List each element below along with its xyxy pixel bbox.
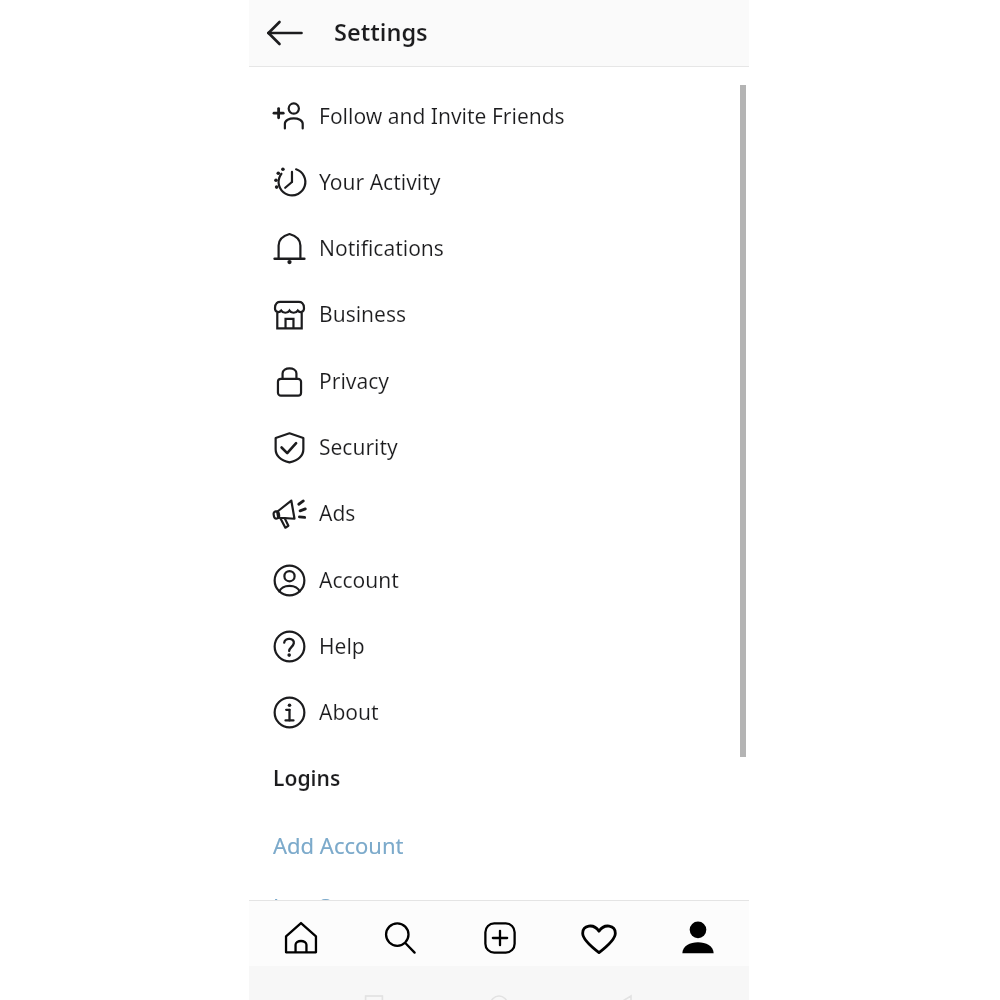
button[interactable]: Follow and Invite Friends [249,83,749,149]
button[interactable]: Notifications [249,215,749,281]
button[interactable]: Log Out [273,891,356,921]
staticText: Help [319,632,365,661]
staticText: Your Activity [319,168,441,197]
staticText: Security [319,433,398,462]
button[interactable]: About [249,679,749,745]
staticText: About [319,698,379,727]
button[interactable]: Help [249,613,749,679]
button[interactable]: Activity [568,907,630,969]
button[interactable]: Back [259,9,307,57]
button[interactable]: Privacy [249,348,749,414]
button[interactable]: Add Account [273,830,404,860]
staticText: Privacy [319,367,390,396]
button[interactable]: New post [469,907,531,969]
button[interactable]: Search [369,907,431,969]
staticText: Logins [273,764,341,793]
button[interactable]: Home [270,907,332,969]
staticText: Notifications [319,234,444,263]
staticText: Account [319,566,399,595]
button[interactable]: Business [249,281,749,347]
button[interactable]: Profile [667,907,729,969]
button[interactable]: Your Activity [249,149,749,215]
staticText: Business [319,300,407,329]
button[interactable]: Account [249,547,749,613]
button[interactable]: Ads [249,480,749,546]
staticText: Follow and Invite Friends [319,102,565,131]
staticText: Ads [319,499,356,528]
staticText: Settings [334,16,428,48]
button[interactable]: Security [249,414,749,480]
